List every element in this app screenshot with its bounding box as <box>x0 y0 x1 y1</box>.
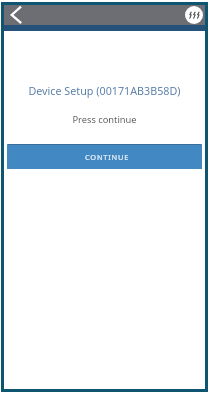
staticText: Device Setup (00171AB3B58D) <box>4 84 205 99</box>
staticText: Press continue <box>4 113 205 126</box>
staticText: CONTINUE <box>85 152 130 162</box>
button[interactable]: CONTINUE <box>7 144 202 169</box>
button[interactable]: Back <box>4 5 25 25</box>
button[interactable]: App logo <box>185 6 203 24</box>
